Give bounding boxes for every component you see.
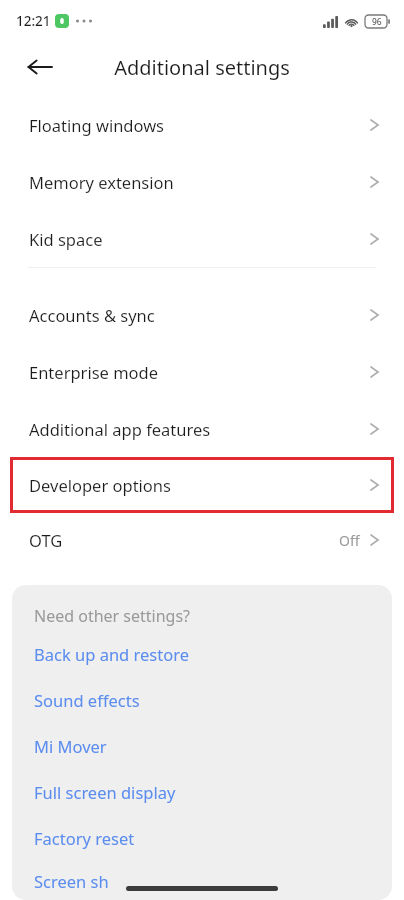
staticText: Back up and restore	[34, 643, 189, 665]
button[interactable]: Factory reset	[12, 815, 392, 861]
staticText: Off	[339, 531, 360, 550]
staticText: Sound effects	[34, 689, 140, 711]
button[interactable]: Full screen display	[12, 769, 392, 815]
button[interactable]: Sound effects	[12, 677, 392, 723]
staticText: Additional settings	[114, 54, 290, 81]
button[interactable]: Kid space	[0, 210, 404, 267]
staticText: Full screen display	[34, 781, 176, 803]
button[interactable]: Additional app features	[0, 400, 404, 457]
staticText: Need other settings?	[34, 605, 191, 627]
button[interactable]: Memory extension	[0, 153, 404, 210]
button[interactable]: Mi Mover	[12, 723, 392, 769]
staticText: Screen sh	[34, 870, 109, 892]
staticText: Factory reset	[34, 827, 135, 849]
staticText: Mi Mover	[34, 735, 107, 757]
button[interactable]: Enterprise mode	[0, 343, 404, 400]
staticText: OTG	[29, 529, 63, 551]
button[interactable]: OTG	[0, 513, 404, 567]
staticText: Kid space	[29, 228, 103, 250]
button[interactable]: Back up and restore	[12, 631, 392, 677]
staticText: Enterprise mode	[29, 361, 159, 383]
staticText: Accounts & sync	[29, 304, 155, 326]
button[interactable]: Floating windows	[0, 96, 404, 153]
staticText: Additional app features	[29, 418, 211, 440]
staticText: 12:21	[16, 12, 51, 30]
staticText: Memory extension	[29, 171, 174, 193]
button[interactable]: Accounts & sync	[0, 286, 404, 343]
button[interactable]: Back	[18, 45, 62, 89]
button[interactable]: Developer options	[10, 457, 394, 513]
staticText: Floating windows	[29, 114, 165, 136]
staticText: Developer options	[29, 474, 171, 496]
button[interactable]: Screen sh	[12, 861, 392, 900]
staticText: 96	[372, 16, 382, 28]
